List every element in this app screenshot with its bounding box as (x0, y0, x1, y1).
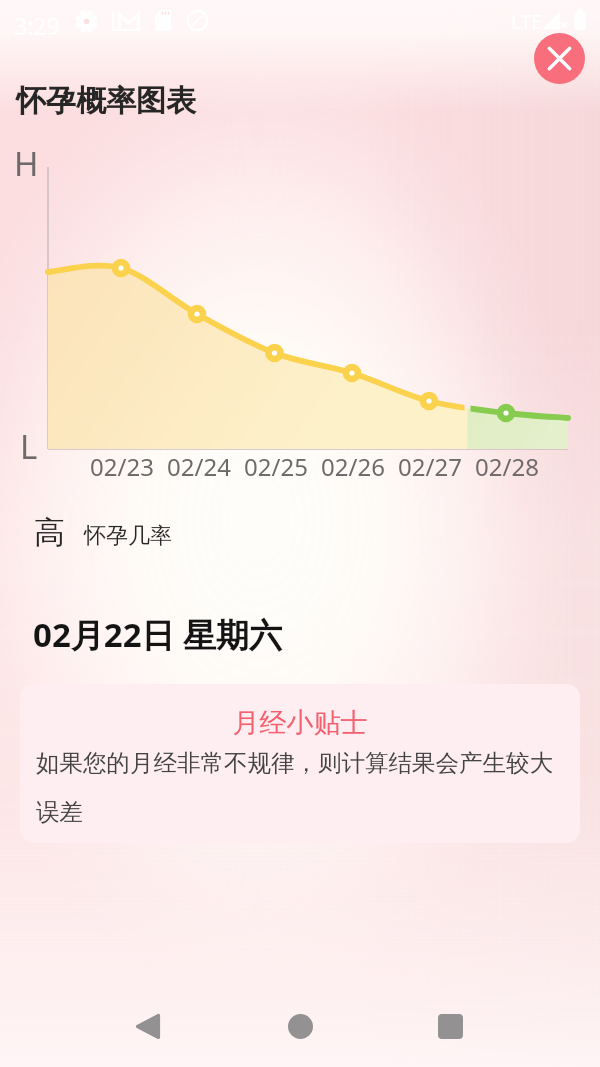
staticText: 02/27 (390, 450, 470, 483)
staticText: LTE (511, 9, 542, 35)
staticText: 怀孕几率 (84, 522, 172, 550)
staticText: 02/26 (313, 450, 393, 483)
button[interactable]: Recents (426, 1002, 474, 1050)
staticText: 高 (34, 513, 65, 552)
button[interactable]: 月经小贴士 (20, 684, 580, 843)
staticText: 02/23 (82, 450, 162, 483)
staticText: 3:29 (14, 10, 60, 41)
staticText: 02/25 (236, 450, 316, 483)
staticText: 02/28 (467, 450, 547, 483)
staticText: H (14, 141, 39, 186)
button[interactable]: Back (124, 1002, 172, 1050)
button[interactable]: Close (534, 33, 585, 84)
staticText: L (20, 424, 38, 469)
staticText: 02/24 (159, 450, 239, 483)
staticText: 如果您的月经非常不规律，则计算结果会产生较大误差 (36, 748, 560, 827)
button[interactable]: Home (276, 1002, 324, 1050)
staticText: 月经小贴士 (20, 706, 580, 740)
staticText: 02月22日 星期六 (33, 612, 283, 657)
staticText: 怀孕概率图表 (16, 82, 196, 120)
